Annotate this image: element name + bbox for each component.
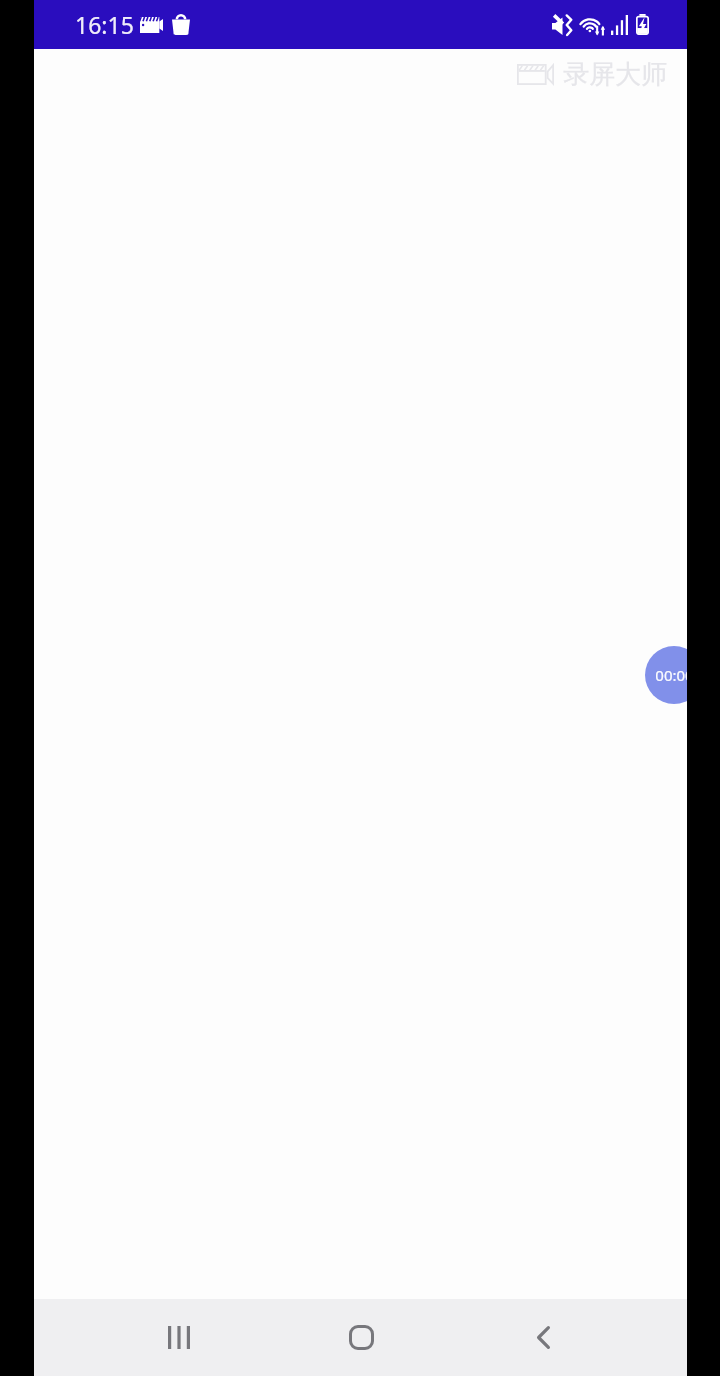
staticText: 00:00 bbox=[655, 665, 687, 685]
button[interactable]: Home bbox=[313, 1299, 409, 1376]
staticText: 16:15 bbox=[75, 9, 134, 40]
button[interactable]: Recents bbox=[131, 1299, 227, 1376]
button[interactable]: Recording timer bbox=[645, 646, 687, 704]
staticText: 录屏大师 bbox=[563, 58, 667, 91]
button[interactable]: Back bbox=[495, 1299, 591, 1376]
